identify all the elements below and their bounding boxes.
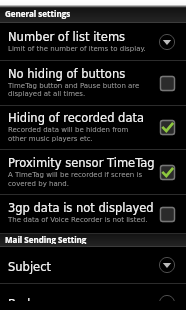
staticText: Mail Sending Setting (5, 234, 87, 244)
staticText: Hiding of recorded data (8, 111, 144, 124)
button[interactable]: No hiding of buttons (0, 61, 186, 105)
button[interactable]: 3gp data is not displayed (0, 195, 186, 233)
button[interactable]: Enabled checkbox (159, 164, 176, 181)
staticText: 3gp data is not displayed (8, 201, 154, 214)
staticText: covered by hand. (8, 180, 69, 188)
button[interactable]: Body (0, 284, 186, 310)
staticText: TimeTag button and Pause button are (8, 82, 140, 90)
staticText: other music players etc. (8, 135, 93, 143)
button[interactable]: Hiding of recorded data (0, 106, 186, 149)
staticText: General settings (5, 8, 71, 19)
button[interactable]: Proximity sensor TimeTag (0, 150, 186, 194)
staticText: Subject (8, 260, 51, 273)
button[interactable]: Disabled checkbox (159, 75, 176, 92)
staticText: Recorded data will be hidden from (8, 126, 129, 134)
staticText: A TimeTag will be recorded if screen is (8, 171, 143, 179)
button[interactable]: Disabled checkbox (159, 206, 176, 223)
button[interactable]: Enabled checkbox (159, 119, 176, 136)
staticText: Limit of the number of items to display. (8, 45, 146, 53)
button[interactable]: Number of list items (0, 23, 186, 60)
staticText: Proximity sensor TimeTag (8, 156, 155, 169)
button[interactable]: Open list (158, 33, 176, 51)
button[interactable]: Open list (158, 256, 176, 274)
staticText: Body (8, 297, 38, 310)
staticText: No hiding of buttons (8, 67, 126, 80)
staticText: The data of Voice Recorder is not listed… (8, 216, 148, 224)
staticText: Number of list items (8, 30, 126, 43)
staticText: displayed at all times. (8, 90, 86, 98)
button[interactable]: Open list (158, 294, 176, 310)
button[interactable]: Subject (0, 247, 186, 283)
